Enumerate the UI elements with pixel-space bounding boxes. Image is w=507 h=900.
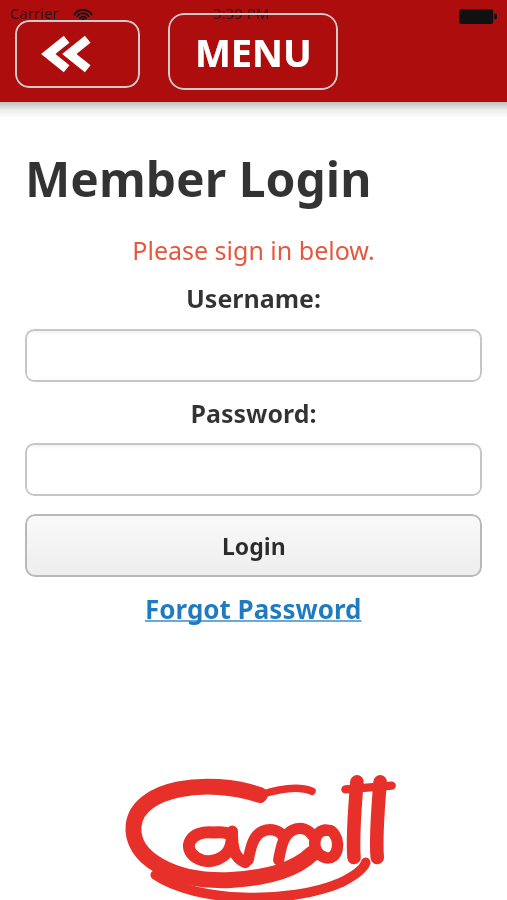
staticText: MENU: [195, 26, 312, 78]
staticText: Login: [222, 530, 286, 561]
button[interactable]: [25, 329, 482, 382]
staticText: 3:39 PM: [213, 3, 270, 23]
button[interactable]: MENU: [168, 13, 338, 90]
button[interactable]: Login: [25, 514, 482, 577]
staticText: Password:: [0, 396, 507, 430]
staticText: Forgot Password: [145, 591, 362, 626]
staticText: Member Login: [25, 146, 507, 211]
button[interactable]: [25, 443, 482, 496]
button[interactable]: Back: [15, 20, 140, 88]
staticText: Please sign in below.: [0, 233, 507, 267]
staticText: Username:: [0, 281, 507, 315]
staticText: Carrier: [10, 3, 59, 23]
button[interactable]: Forgot Password: [0, 591, 507, 626]
